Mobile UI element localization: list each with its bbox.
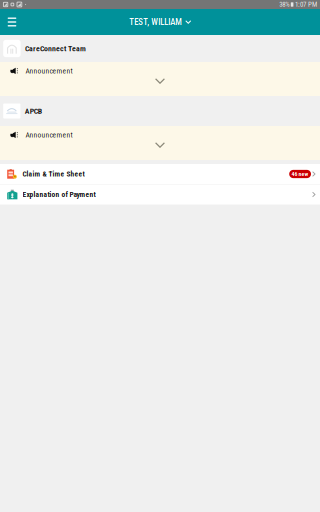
staticText: 46 new — [292, 171, 309, 177]
staticText: TEST, WILLIAM — [129, 17, 182, 27]
button[interactable]: Menu — [0, 9, 24, 35]
staticText: Explanation of Payment — [23, 190, 96, 199]
staticText: 38% — [279, 0, 289, 8]
staticText: Claim & Time Sheet — [23, 170, 85, 178]
button[interactable]: Explanation of Payment — [0, 184, 320, 204]
button[interactable]: Claim & Time Sheet — [0, 164, 320, 184]
staticText: APCB — [25, 106, 42, 116]
staticText: CareConnect Team — [25, 44, 86, 53]
staticText: Announcement — [25, 131, 72, 139]
button[interactable]: Announcement — [0, 62, 320, 96]
button[interactable]: Announcement — [0, 126, 320, 160]
staticText: 1:07 PM — [295, 0, 317, 8]
button[interactable]: TEST, WILLIAM — [123, 9, 197, 35]
staticText: Announcement — [25, 67, 72, 75]
